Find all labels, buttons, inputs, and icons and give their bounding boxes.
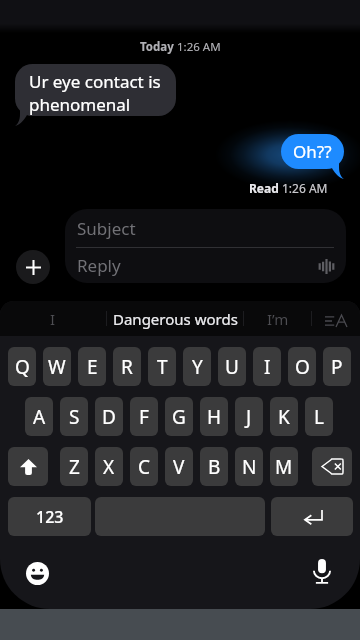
staticText: Oh?? (293, 140, 332, 163)
button[interactable]: U (218, 347, 246, 386)
staticText: K (278, 404, 290, 430)
staticText: N (242, 454, 257, 480)
staticText: S (69, 404, 80, 430)
staticText: W (48, 354, 66, 380)
button[interactable]: O (288, 347, 316, 386)
staticText: Y (192, 354, 203, 380)
button[interactable]: Z (60, 447, 88, 486)
staticText: 1:26 AM (177, 39, 221, 55)
staticText: B (208, 454, 221, 480)
staticText: I (264, 354, 271, 380)
button[interactable]: D (95, 397, 123, 436)
button[interactable]: Y (183, 347, 211, 386)
staticText: H (207, 404, 222, 430)
staticText: C (138, 454, 151, 480)
staticText: J (246, 404, 252, 430)
staticText: T (157, 354, 168, 380)
button[interactable]: B (200, 447, 228, 486)
staticText: F (139, 404, 149, 430)
button[interactable]: C (130, 447, 158, 486)
staticText: V (173, 454, 185, 480)
staticText: M (275, 454, 293, 480)
button[interactable]: A (25, 397, 53, 436)
button[interactable]: T (148, 347, 176, 386)
staticText: I’m (267, 309, 289, 329)
staticText: R (121, 354, 133, 380)
button[interactable]: V (165, 447, 193, 486)
button[interactable]: I (253, 347, 281, 386)
button[interactable]: X (95, 447, 123, 486)
button[interactable]: Enter (271, 497, 353, 536)
button[interactable]: W (43, 347, 71, 386)
button[interactable]: R (113, 347, 141, 386)
staticText: E (87, 354, 98, 380)
staticText: U (225, 354, 239, 380)
staticText: 1:26 AM (282, 180, 328, 196)
staticText: P (331, 354, 343, 380)
button[interactable]: Dangerous words (107, 301, 243, 336)
button[interactable]: Shift (8, 447, 48, 486)
button[interactable]: Emoji (24, 560, 50, 586)
button[interactable]: Add attachment (16, 250, 50, 284)
staticText: Subject (77, 217, 136, 240)
staticText: Read (249, 180, 282, 196)
button[interactable]: P (323, 347, 351, 386)
button[interactable]: Audio message (313, 253, 339, 279)
button[interactable]: Backspace (312, 447, 352, 486)
button[interactable]: Text formatting (312, 301, 360, 336)
button[interactable]: E (78, 347, 106, 386)
button[interactable]: S (60, 397, 88, 436)
staticText: D (102, 404, 116, 430)
button[interactable]: I (0, 301, 106, 336)
staticText: O (295, 354, 310, 380)
staticText: G (172, 404, 186, 430)
button[interactable]: H (200, 397, 228, 436)
button[interactable]: G (165, 397, 193, 436)
staticText: 123 (36, 506, 64, 528)
staticText: Reply (77, 254, 121, 277)
button[interactable]: M (270, 447, 298, 486)
staticText: phenomenal (29, 93, 131, 116)
staticText: Ur eye contact is (29, 70, 161, 93)
staticText: I (50, 309, 56, 329)
button[interactable]: F (130, 397, 158, 436)
staticText: Z (69, 454, 80, 480)
staticText: L (314, 404, 324, 430)
button[interactable]: J (235, 397, 263, 436)
staticText: X (103, 454, 115, 480)
button[interactable]: L (305, 397, 333, 436)
button[interactable]: K (270, 397, 298, 436)
button[interactable]: Subject (65, 209, 346, 283)
button[interactable]: 123 (8, 497, 91, 536)
button[interactable]: N (235, 447, 263, 486)
button[interactable]: I’m (244, 301, 311, 336)
staticText: Dangerous words (113, 309, 238, 329)
staticText: Today (140, 39, 177, 55)
button[interactable]: Q (8, 347, 36, 386)
button[interactable]: Voice input (309, 556, 335, 588)
staticText: Q (15, 354, 30, 380)
staticText: A (33, 404, 46, 430)
